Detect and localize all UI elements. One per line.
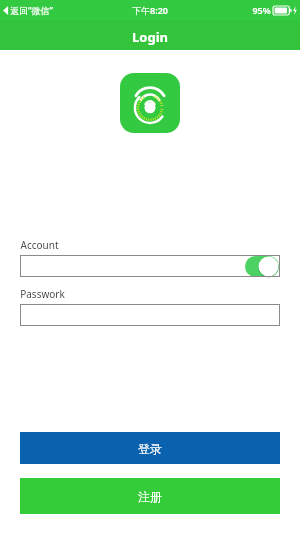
button[interactable]: App logo (120, 73, 180, 133)
staticText: Passwork (20, 287, 65, 301)
staticText: 登录 (138, 441, 162, 456)
button[interactable]: Toggle (245, 256, 279, 277)
button[interactable]: 注册 (20, 478, 280, 514)
staticText: 下午8:20 (132, 4, 168, 16)
button[interactable]: 登录 (20, 432, 280, 464)
staticText: Account (20, 238, 59, 252)
staticText: 返回“微信” (10, 4, 53, 16)
staticText: Login (132, 28, 168, 46)
button[interactable]: Back to WeChat (3, 4, 53, 16)
staticText: 注册 (138, 489, 162, 504)
button[interactable]: Toggle (20, 255, 280, 277)
button[interactable] (20, 304, 280, 326)
staticText: 95% (252, 4, 271, 16)
